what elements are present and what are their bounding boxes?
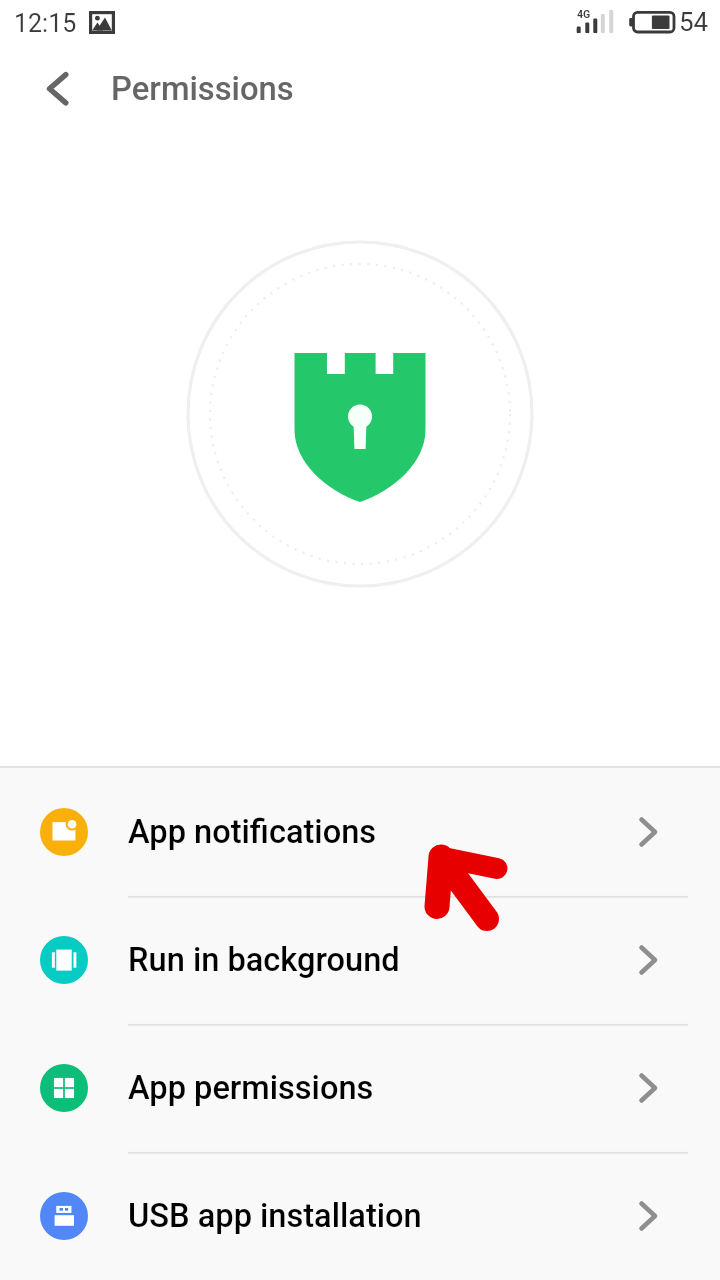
button[interactable]: Back xyxy=(20,56,92,128)
staticText: 4G xyxy=(577,8,591,20)
button[interactable]: USB app installation xyxy=(0,1152,720,1280)
staticText: 54 xyxy=(679,7,709,37)
button[interactable]: App notifications xyxy=(0,768,720,896)
button[interactable]: Run in background xyxy=(0,896,720,1024)
staticText: 12:15 xyxy=(14,9,77,38)
staticText: Permissions xyxy=(111,70,294,108)
button[interactable]: App permissions xyxy=(0,1024,720,1152)
staticText: Run in background xyxy=(128,941,400,979)
staticText: USB app installation xyxy=(128,1197,422,1235)
staticText: App notifications xyxy=(128,813,377,851)
staticText: App permissions xyxy=(128,1069,374,1107)
